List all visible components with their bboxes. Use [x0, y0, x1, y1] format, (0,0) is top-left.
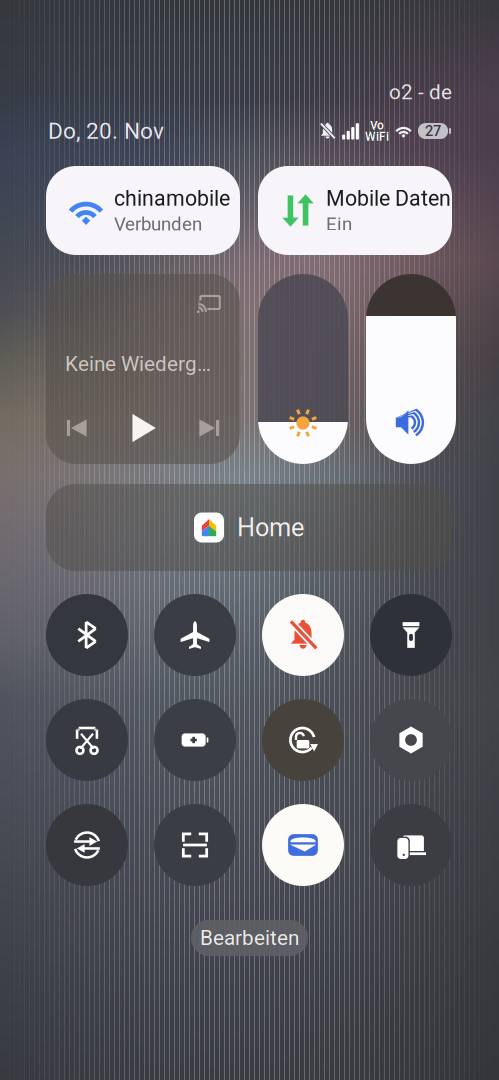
- staticText: WiFi: [365, 129, 389, 144]
- button[interactable]: Mobile Daten: [258, 166, 452, 255]
- button[interactable]: Home: [46, 484, 452, 571]
- staticText: Vo: [370, 118, 384, 132]
- button[interactable]: Energiesparmodus: [154, 699, 236, 781]
- staticText: Ein: [326, 213, 352, 235]
- button[interactable]: Nicht stören: [262, 594, 344, 676]
- button[interactable]: Bildschirm übertragen: [370, 804, 452, 886]
- button[interactable]: Einstellungen: [370, 699, 452, 781]
- button[interactable]: chinamobile: [46, 166, 240, 255]
- button[interactable]: Bluetooth: [46, 594, 128, 676]
- staticText: o2 - de: [389, 80, 452, 104]
- button[interactable]: Screenshot: [46, 699, 128, 781]
- button[interactable]: Helligkeit: [258, 274, 348, 464]
- staticText: Bearbeiten: [200, 926, 299, 950]
- staticText: 27: [425, 122, 441, 140]
- button[interactable]: Datensparmodus: [46, 804, 128, 886]
- staticText: Home: [237, 513, 304, 542]
- staticText: Mobile Daten: [326, 186, 451, 211]
- staticText: chinamobile: [114, 186, 230, 211]
- staticText: Keine Wiederga…: [65, 352, 221, 376]
- button[interactable]: Keine Wiederga…: [46, 274, 240, 464]
- button[interactable]: Flugmodus: [154, 594, 236, 676]
- button[interactable]: Display drehen: [262, 699, 344, 781]
- button[interactable]: Taschenlampe: [370, 594, 452, 676]
- staticText: Do, 20. Nov: [48, 118, 164, 144]
- button[interactable]: Bearbeiten: [191, 920, 308, 956]
- button[interactable]: QR-Code scannen: [154, 804, 236, 886]
- button[interactable]: Wallet: [262, 804, 344, 886]
- button[interactable]: Lautstärke: [366, 274, 456, 464]
- staticText: Verbunden: [114, 213, 202, 235]
